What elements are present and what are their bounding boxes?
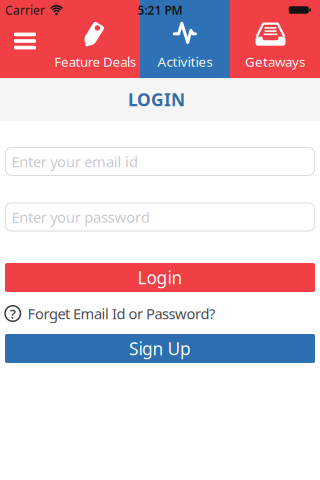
- staticText: LOGIN: [128, 88, 185, 111]
- staticText: Forget Email Id or Password?: [27, 304, 215, 323]
- staticText: Getaways: [245, 53, 305, 70]
- staticText: Sign Up: [129, 337, 191, 360]
- staticText: Feature Deals: [54, 53, 136, 70]
- button[interactable]: Sign Up: [5, 334, 315, 363]
- staticText: ?: [10, 305, 16, 322]
- staticText: 5:21 PM: [137, 2, 182, 18]
- button[interactable]: Login: [5, 263, 315, 292]
- button[interactable]: Feature Deals: [50, 0, 140, 78]
- button[interactable]: Getaways: [230, 0, 320, 78]
- button[interactable]: Enter your email id: [5, 147, 314, 175]
- staticText: Enter your email id: [11, 152, 138, 171]
- staticText: Enter your password: [11, 207, 150, 227]
- staticText: Carrier: [5, 2, 45, 18]
- staticText: Activities: [157, 53, 212, 70]
- button[interactable]: Activities: [140, 0, 230, 78]
- button[interactable]: Menu: [0, 0, 50, 78]
- button[interactable]: Enter your password: [5, 203, 314, 231]
- button[interactable]: ?: [0, 305, 320, 321]
- staticText: Login: [137, 266, 182, 289]
